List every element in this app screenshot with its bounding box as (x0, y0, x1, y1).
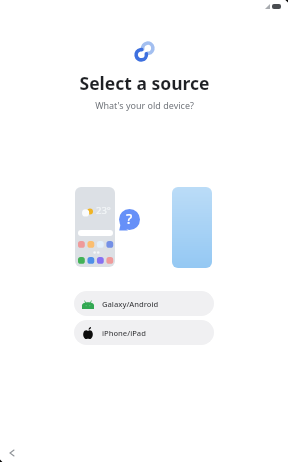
button[interactable]: iPhone/iPad (74, 320, 214, 345)
button[interactable]: Back (0, 441, 24, 462)
button[interactable]: Galaxy/Android (74, 291, 214, 316)
staticText: iPhone/iPad (102, 328, 146, 338)
staticText: Galaxy/Android (102, 299, 159, 309)
staticText: Select a source (79, 71, 210, 95)
staticText: 23° (96, 204, 111, 217)
staticText: ? (126, 209, 133, 228)
staticText: What's your old device? (95, 99, 194, 111)
